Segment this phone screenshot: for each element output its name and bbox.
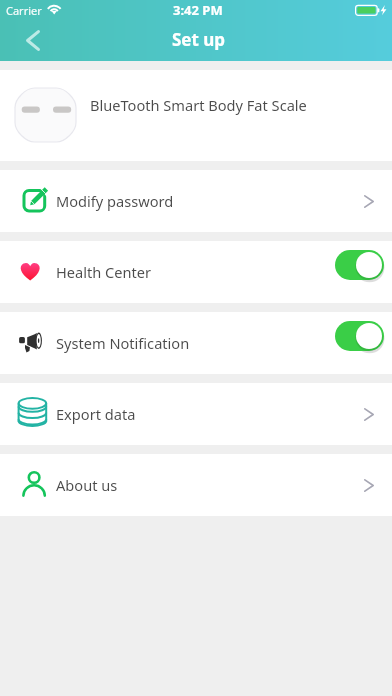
button[interactable]: System Notification bbox=[0, 312, 392, 374]
staticText: System Notification bbox=[56, 333, 190, 353]
staticText: Export data bbox=[56, 404, 136, 424]
staticText: Modify password bbox=[56, 191, 174, 211]
button[interactable]: Health Center bbox=[0, 241, 392, 303]
button[interactable]: Toggle on bbox=[335, 250, 384, 280]
button[interactable]: Toggle on bbox=[335, 321, 384, 351]
button[interactable]: BlueTooth Smart Body Fat Scale bbox=[0, 70, 392, 161]
staticText: Set up bbox=[172, 28, 226, 51]
button[interactable]: Modify password bbox=[0, 170, 392, 232]
staticText: About us bbox=[56, 475, 118, 495]
staticText: BlueTooth Smart Body Fat Scale bbox=[90, 95, 307, 115]
staticText: Carrier bbox=[6, 3, 42, 18]
staticText: 3:42 PM bbox=[173, 1, 223, 19]
button[interactable]: Export data bbox=[0, 383, 392, 445]
button[interactable]: Back bbox=[0, 20, 56, 61]
button[interactable]: About us bbox=[0, 454, 392, 516]
staticText: Health Center bbox=[56, 262, 152, 282]
